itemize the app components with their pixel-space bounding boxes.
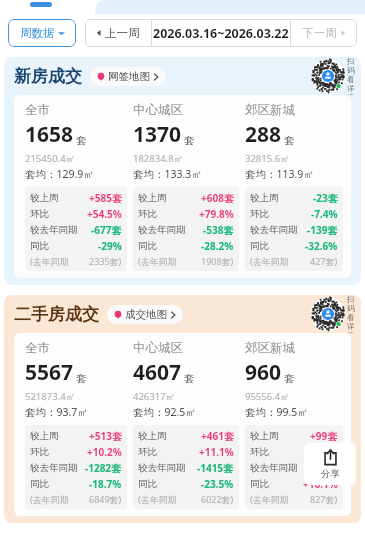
staticText: 中心城区	[133, 340, 183, 356]
staticText: 套	[76, 372, 87, 385]
staticText: 1370	[133, 120, 182, 149]
staticText: 4607	[133, 358, 182, 387]
staticText: 426317㎡	[133, 390, 176, 403]
staticText: +79.8%	[199, 207, 234, 221]
staticText: 套	[284, 134, 295, 147]
staticText: 套均：129.9㎡	[25, 167, 94, 181]
staticText: 套均：93.7㎡	[25, 405, 88, 419]
staticText: +11.1%	[199, 445, 234, 459]
staticText: 521873.4㎡	[25, 390, 76, 403]
staticText: -23套	[313, 191, 338, 205]
staticText: 较去年同期	[250, 462, 298, 474]
staticText: -23.5%	[201, 477, 234, 491]
staticText: 较去年同期	[138, 462, 186, 474]
staticText: -1415套	[197, 461, 234, 475]
staticText: 较上周	[250, 430, 279, 442]
staticText: 套均：92.5㎡	[133, 405, 196, 419]
staticText: 2026.03.16~2026.03.22	[153, 25, 289, 42]
staticText: -677套	[91, 223, 122, 237]
staticText: 情	[347, 93, 355, 95]
staticText: 环比	[30, 446, 49, 458]
staticText: 新房成交	[14, 66, 82, 87]
staticText: 同比	[138, 240, 157, 252]
staticText: 同比	[30, 478, 49, 490]
button[interactable]: 2026.03.16~2026.03.22	[152, 19, 290, 47]
staticText: +10.2%	[87, 445, 122, 459]
staticText: -139套	[307, 223, 338, 237]
staticText: (去年同期	[30, 493, 69, 505]
staticText: 套	[184, 372, 195, 385]
staticText: 5567	[25, 358, 74, 387]
staticText: 215450.4㎡	[25, 152, 76, 165]
staticText: 套	[76, 134, 87, 147]
staticText: -28.2%	[201, 239, 234, 253]
staticText: 环比	[250, 208, 269, 220]
button[interactable]: 成交地图	[114, 305, 176, 324]
staticText: 较上周	[138, 192, 167, 204]
staticText: 郊区新城	[245, 340, 295, 356]
staticText: -538套	[203, 223, 234, 237]
staticText: -32.6%	[305, 239, 338, 253]
staticText: +16.1%	[303, 477, 338, 491]
staticText: -1282套	[85, 461, 122, 475]
staticText: 2335套)	[89, 255, 122, 267]
staticText: 详	[347, 322, 355, 331]
staticText: 较去年同期	[30, 462, 78, 474]
staticText: 二手房成交	[14, 304, 99, 325]
staticText: +513套	[89, 429, 122, 443]
staticText: 95556.4㎡	[245, 390, 290, 403]
staticText: 32815.6㎡	[245, 152, 290, 165]
staticText: 详	[347, 84, 355, 93]
button[interactable]: 分享	[304, 443, 356, 485]
button[interactable]: 网签地图	[97, 67, 159, 86]
staticText: +585套	[89, 191, 122, 205]
staticText: +99套	[310, 429, 338, 443]
staticText: 960	[245, 358, 282, 387]
staticText: 扫	[347, 295, 355, 304]
staticText: 较上周	[30, 192, 59, 204]
staticText: (去年同期	[30, 255, 69, 267]
staticText: -29%	[98, 239, 122, 253]
staticText: 套均：133.3㎡	[133, 167, 202, 181]
staticText: 环比	[250, 446, 269, 458]
staticText: 较去年同期	[138, 224, 186, 236]
staticText: 码	[347, 66, 355, 75]
staticText: +133套	[305, 461, 338, 475]
staticText: 较去年同期	[250, 224, 298, 236]
staticText: 较上周	[30, 430, 59, 442]
staticText: 码	[347, 304, 355, 313]
staticText: 分享	[321, 468, 340, 480]
staticText: (去年同期	[138, 255, 177, 267]
staticText: +5.7%	[309, 445, 338, 459]
button[interactable]: 扫码看详情	[311, 57, 355, 95]
staticText: +54.5%	[87, 207, 122, 221]
button[interactable]: 周数据	[8, 19, 76, 47]
staticText: 下一周	[302, 26, 337, 40]
staticText: 套均：99.5㎡	[245, 405, 308, 419]
button[interactable]: 上一周	[85, 19, 151, 47]
staticText: -7.4%	[311, 207, 338, 221]
staticText: 1908套)	[201, 255, 234, 267]
staticText: 情	[347, 331, 355, 333]
staticText: 中心城区	[133, 102, 183, 118]
staticText: 全市	[25, 102, 50, 118]
staticText: (去年同期	[138, 493, 177, 505]
staticText: 1658	[25, 120, 74, 149]
staticText: 郊区新城	[245, 102, 295, 118]
staticText: -18.7%	[89, 477, 122, 491]
staticText: 成交地图	[125, 308, 167, 321]
staticText: (去年同期	[250, 255, 289, 267]
staticText: 同比	[30, 240, 49, 252]
staticText: 较上周	[138, 430, 167, 442]
staticText: 全市	[25, 340, 50, 356]
staticText: +461套	[201, 429, 234, 443]
button[interactable]: 扫码看详情	[311, 295, 355, 333]
staticText: 套	[184, 134, 195, 147]
staticText: 看	[347, 75, 355, 84]
staticText: 网签地图	[108, 70, 150, 83]
button[interactable]: 下一周	[291, 19, 357, 47]
staticText: 较上周	[250, 192, 279, 204]
staticText: 扫	[347, 57, 355, 66]
staticText: 上一周	[105, 26, 140, 40]
staticText: (去年同期	[250, 493, 289, 505]
